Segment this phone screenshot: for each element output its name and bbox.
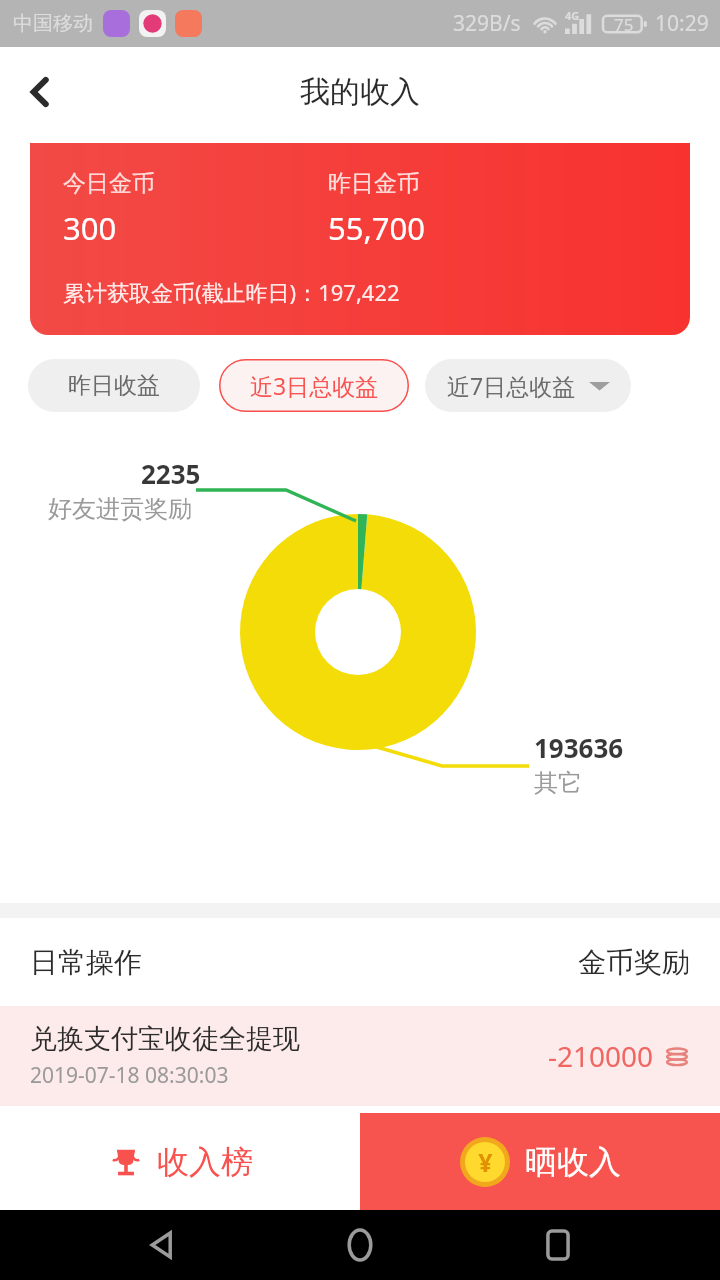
staticText: 193636 — [534, 730, 624, 765]
button[interactable]: 近3日总收益 — [219, 359, 409, 412]
staticText: 55,700 — [328, 207, 425, 249]
staticText: 2019-07-18 08:30:03 — [30, 1061, 229, 1090]
staticText: 300 — [63, 207, 117, 249]
staticText: 329B/s — [453, 9, 521, 38]
staticText: 累计获取金币(截止昨日)：197,422 — [63, 277, 400, 307]
staticText: 其它 — [534, 768, 582, 798]
staticText: 昨日金币 — [328, 169, 420, 198]
button[interactable]: 昨日收益 — [28, 359, 200, 412]
staticText: 收入榜 — [157, 1142, 253, 1182]
button[interactable]: ¥ — [360, 1113, 720, 1210]
staticText: 近3日总收益 — [250, 370, 379, 401]
staticText: 金币奖励 — [578, 945, 690, 980]
staticText: 兑换支付宝收徒全提现 — [30, 1022, 300, 1056]
button[interactable]: Home — [325, 1210, 395, 1280]
staticText: ¥ — [478, 1145, 493, 1179]
staticText: -210000 — [548, 1037, 654, 1075]
button[interactable]: Recents — [523, 1210, 593, 1280]
staticText: 好友进贡奖励 — [48, 494, 192, 524]
staticText: 75 — [614, 13, 634, 36]
staticText: 近7日总收益 — [447, 370, 576, 401]
staticText: 昨日收益 — [68, 371, 160, 400]
staticText: 晒收入 — [525, 1142, 621, 1182]
button[interactable]: 收入榜 — [0, 1113, 360, 1210]
button[interactable]: 今日金币 — [30, 143, 690, 335]
staticText: 我的收入 — [300, 73, 420, 111]
staticText: 日常操作 — [30, 945, 142, 980]
staticText: 10:29 — [655, 9, 709, 38]
button[interactable]: Back — [128, 1210, 198, 1280]
button[interactable]: 兑换支付宝收徒全提现 — [0, 1006, 720, 1106]
button[interactable]: Back — [8, 60, 72, 124]
staticText: 今日金币 — [63, 169, 155, 198]
button[interactable]: 近7日总收益 — [425, 359, 631, 412]
staticText: 2235 — [141, 456, 201, 491]
staticText: 中国移动 — [13, 11, 93, 36]
staticText: 4G — [565, 8, 580, 23]
